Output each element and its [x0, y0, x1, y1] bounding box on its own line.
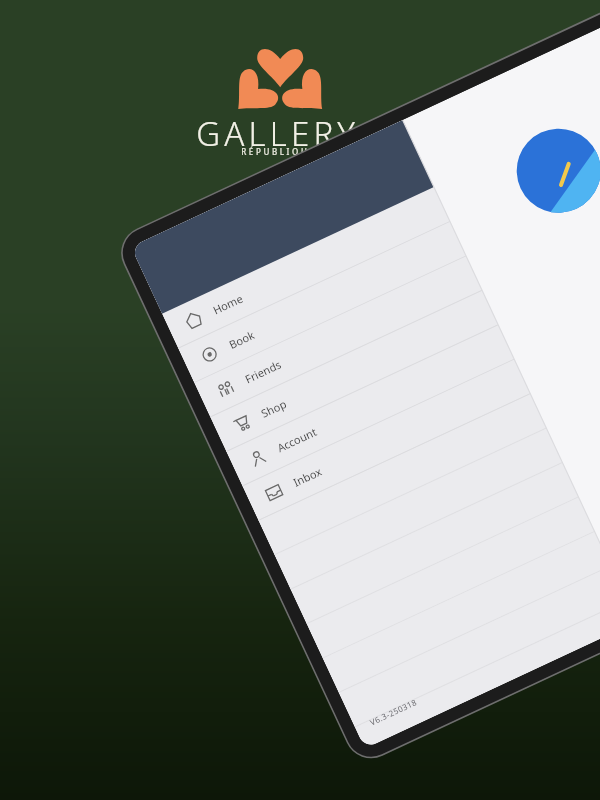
button[interactable]: Gallery République: [0, 0, 600, 800]
